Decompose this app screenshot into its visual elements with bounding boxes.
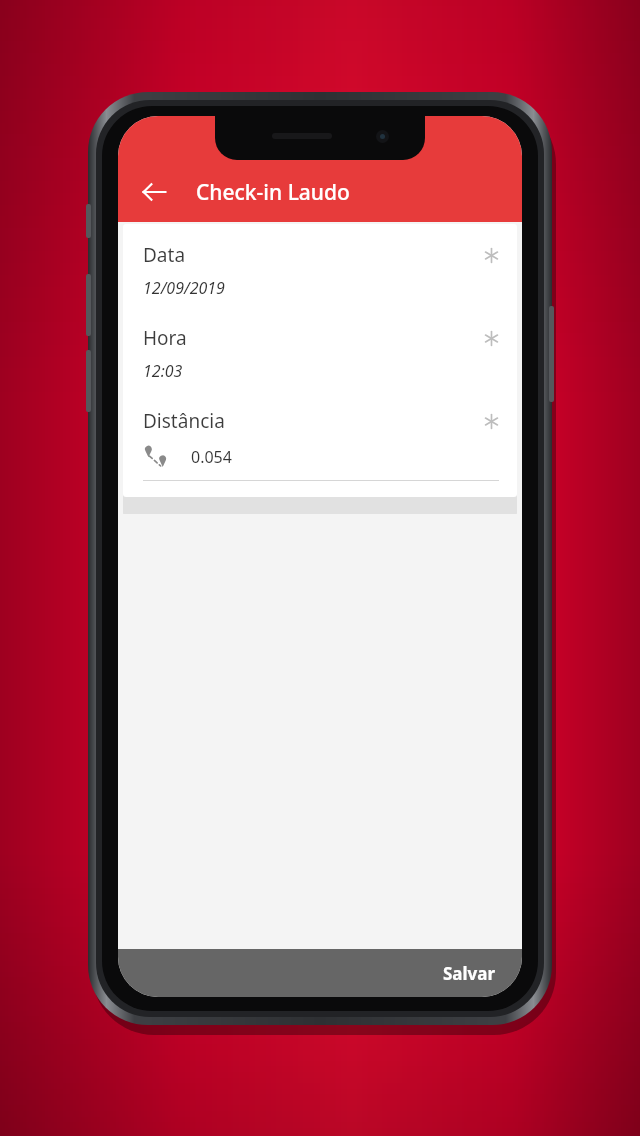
staticText: Salvar (443, 962, 496, 985)
button[interactable]: Salvar (118, 949, 522, 997)
staticText: Hora (143, 325, 187, 351)
button[interactable]: Back (134, 172, 174, 212)
staticText: 0.054 (191, 446, 232, 468)
staticText: 12:03 (143, 360, 183, 382)
staticText: Check-in Laudo (196, 178, 350, 207)
staticText: 12/09/2019 (143, 277, 225, 299)
staticText: Distância (143, 408, 225, 434)
staticText: Data (143, 242, 186, 268)
